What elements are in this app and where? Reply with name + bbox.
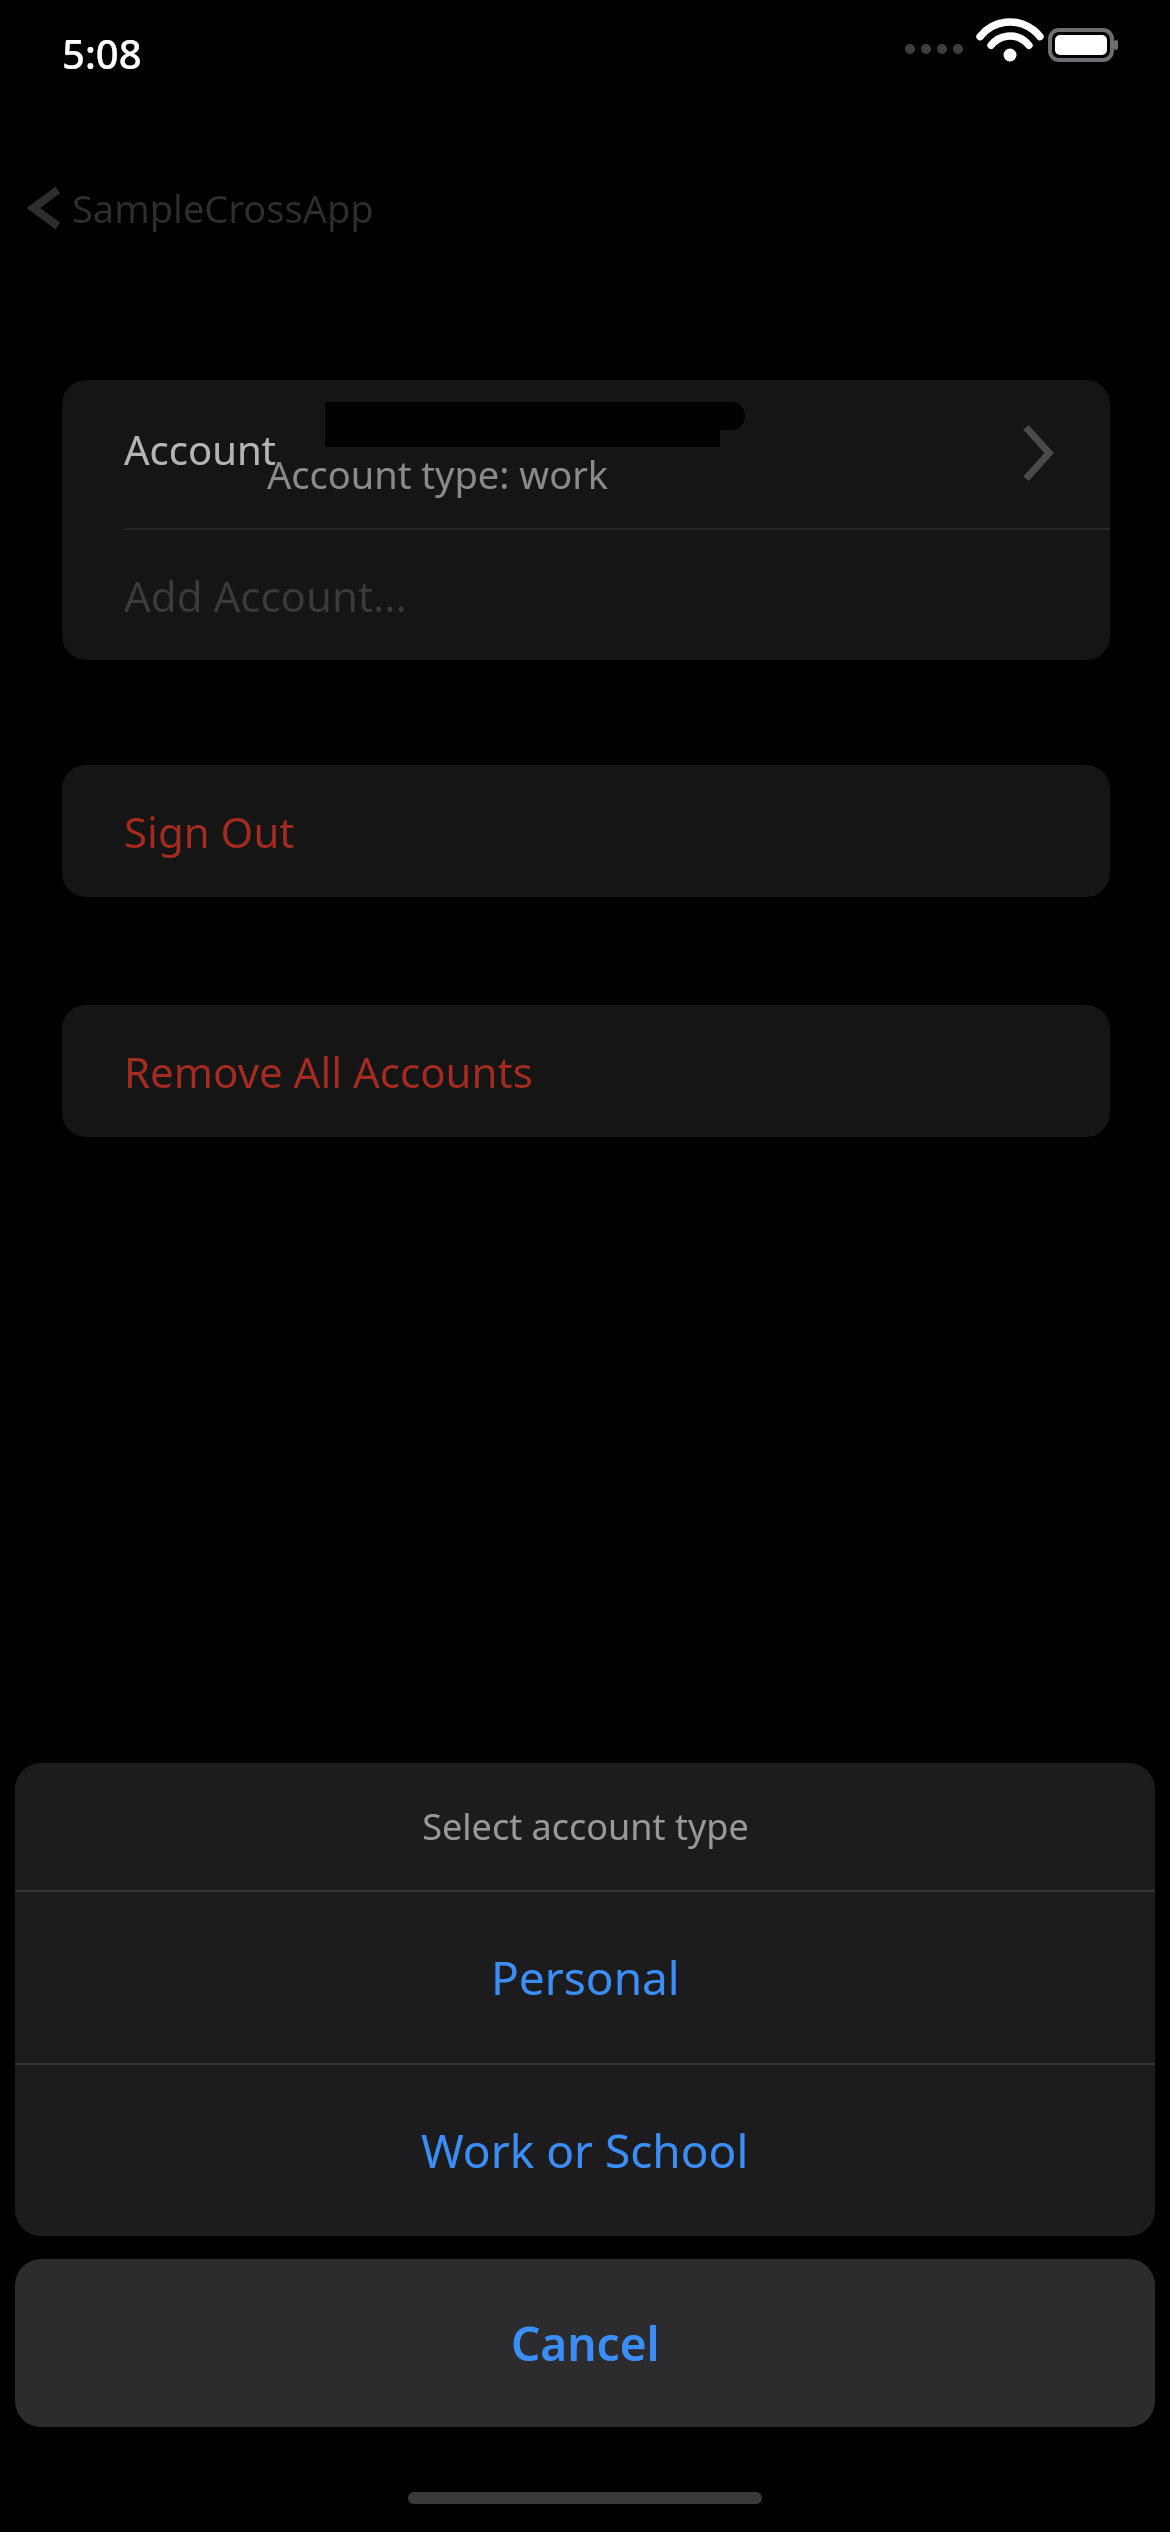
staticText: Account: [124, 422, 277, 476]
button[interactable]: Sign Out: [62, 765, 1110, 897]
staticText: 5:08: [62, 26, 142, 80]
button[interactable]: Cancel: [15, 2259, 1155, 2427]
button[interactable]: Account: [62, 380, 1110, 528]
staticText: SampleCrossApp: [72, 182, 374, 234]
staticText: Select account type: [422, 1802, 749, 1851]
staticText: Personal: [491, 1946, 680, 2009]
staticText: Account type: work: [267, 448, 609, 500]
button[interactable]: Personal: [15, 1892, 1155, 2063]
staticText: Cancel: [511, 2312, 660, 2375]
staticText: Work or School: [421, 2119, 749, 2182]
button[interactable]: Back to SampleCrossApp: [14, 170, 394, 246]
button[interactable]: Remove All Accounts: [62, 1005, 1110, 1137]
staticText: Add Account...: [124, 567, 407, 624]
button[interactable]: Work or School: [15, 2065, 1155, 2236]
staticText: Sign Out: [124, 803, 295, 860]
staticText: Remove All Accounts: [124, 1043, 533, 1100]
button[interactable]: Add Account...: [62, 530, 1110, 660]
